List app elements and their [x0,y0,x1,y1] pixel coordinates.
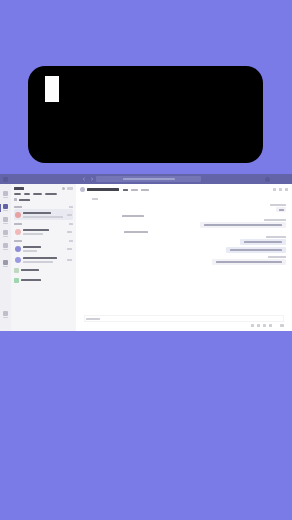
button[interactable] [33,193,42,195]
button[interactable] [240,239,286,245]
button[interactable]: More apps [0,308,11,321]
button[interactable]: Chat [0,201,11,214]
button[interactable]: Back [82,177,86,181]
button[interactable] [14,266,73,274]
button[interactable] [24,193,30,195]
button[interactable] [14,209,73,220]
button[interactable]: Search [96,176,201,182]
button[interactable] [226,247,286,253]
button[interactable] [14,198,73,201]
button[interactable]: Files [0,257,11,270]
button[interactable]: Video preview [28,66,263,163]
button[interactable]: Activity [0,188,11,201]
button[interactable]: Type a message [84,315,284,322]
button[interactable]: Calls [0,240,11,253]
button[interactable] [14,243,73,254]
button[interactable] [276,207,286,212]
button[interactable] [14,254,73,265]
button[interactable]: Teams [0,214,11,227]
button[interactable] [200,222,286,228]
button[interactable] [14,226,73,237]
button[interactable]: Forward [90,177,94,181]
button[interactable] [14,193,21,195]
button[interactable] [45,193,57,195]
button[interactable] [212,259,286,265]
button[interactable]: Calendar [0,227,11,240]
button[interactable]: Account [265,177,270,182]
button[interactable] [14,276,73,284]
